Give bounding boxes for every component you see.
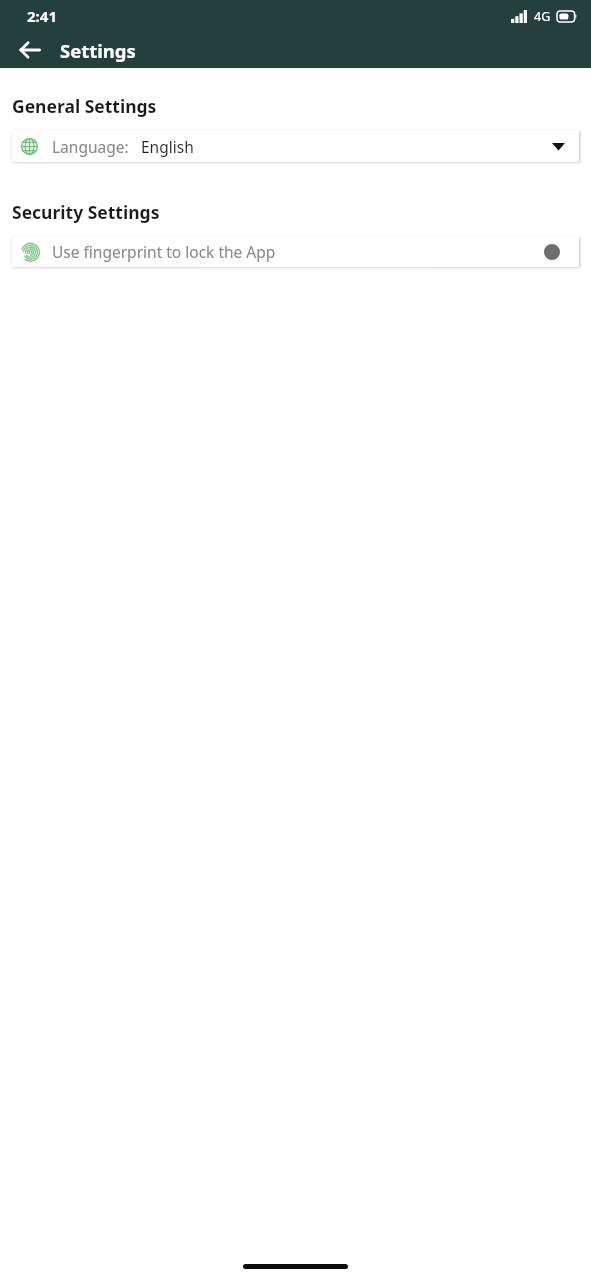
button[interactable]: Language: — [12, 130, 579, 162]
button[interactable]: Use fingerprint to lock the App — [12, 236, 579, 267]
staticText: Security Settings — [12, 200, 160, 224]
staticText: English — [141, 136, 194, 157]
button[interactable]: Back — [12, 32, 48, 68]
staticText: 2:41 — [27, 6, 57, 26]
staticText: Settings — [60, 38, 136, 63]
staticText: General Settings — [12, 94, 157, 118]
staticText: Language: — [52, 136, 129, 157]
staticText: Use fingerprint to lock the App — [52, 241, 276, 262]
button[interactable]: Toggle fingerprint lock — [539, 241, 565, 263]
staticText: 4G — [534, 8, 551, 25]
